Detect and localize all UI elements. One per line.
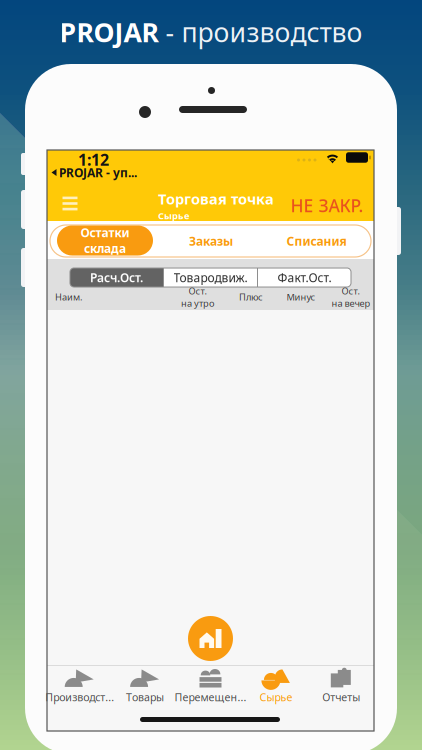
staticText: Наим. xyxy=(55,291,83,303)
staticText: Товары xyxy=(126,690,164,704)
staticText: на утро xyxy=(181,297,215,309)
button[interactable]: НЕ ЗАКР. xyxy=(283,188,371,223)
staticText: 1:12 xyxy=(78,149,109,170)
staticText: Торговая точка xyxy=(158,189,274,208)
staticText: Плюс xyxy=(239,291,263,303)
button[interactable]: Отчеты xyxy=(309,668,374,704)
staticText: PROJAR xyxy=(59,14,158,50)
staticText: Отчеты xyxy=(322,690,360,704)
staticText: Заказы xyxy=(189,233,233,249)
staticText: НЕ ЗАКР. xyxy=(290,194,363,217)
button[interactable]: Заказы xyxy=(161,225,261,257)
staticText: Факт.Ост. xyxy=(277,269,331,285)
staticText: Остатки xyxy=(80,225,129,240)
staticText: Расч.Ост. xyxy=(90,269,143,285)
staticText: Ост. xyxy=(188,285,207,297)
button[interactable]: Расч.Ост. xyxy=(70,268,163,287)
staticText: PROJAR - уп... xyxy=(59,164,137,180)
button[interactable]: Перемещен... xyxy=(178,668,243,704)
button[interactable]: Menu xyxy=(47,186,93,221)
staticText: Перемещен... xyxy=(174,690,246,704)
button[interactable]: Товары xyxy=(112,668,178,704)
button[interactable]: Факт.Ост. xyxy=(258,268,351,287)
staticText: - производство xyxy=(158,14,362,50)
staticText: Ост. xyxy=(341,285,360,297)
staticText: Сырье xyxy=(158,209,189,222)
button[interactable]: Производст... xyxy=(47,668,112,704)
button[interactable]: Home xyxy=(188,616,233,661)
staticText: на вечер xyxy=(331,297,370,309)
button[interactable]: Остатки xyxy=(57,225,153,255)
button[interactable]: Сырье xyxy=(243,668,309,704)
staticText: Сырье xyxy=(259,690,292,704)
button[interactable]: Списания xyxy=(265,225,368,257)
button[interactable]: Товародвиж. xyxy=(164,268,257,287)
staticText: Товародвиж. xyxy=(173,269,247,285)
staticText: Минус xyxy=(286,291,315,303)
staticText: склада xyxy=(84,240,126,256)
staticText: Производст... xyxy=(45,690,114,704)
staticText: Списания xyxy=(286,233,346,249)
